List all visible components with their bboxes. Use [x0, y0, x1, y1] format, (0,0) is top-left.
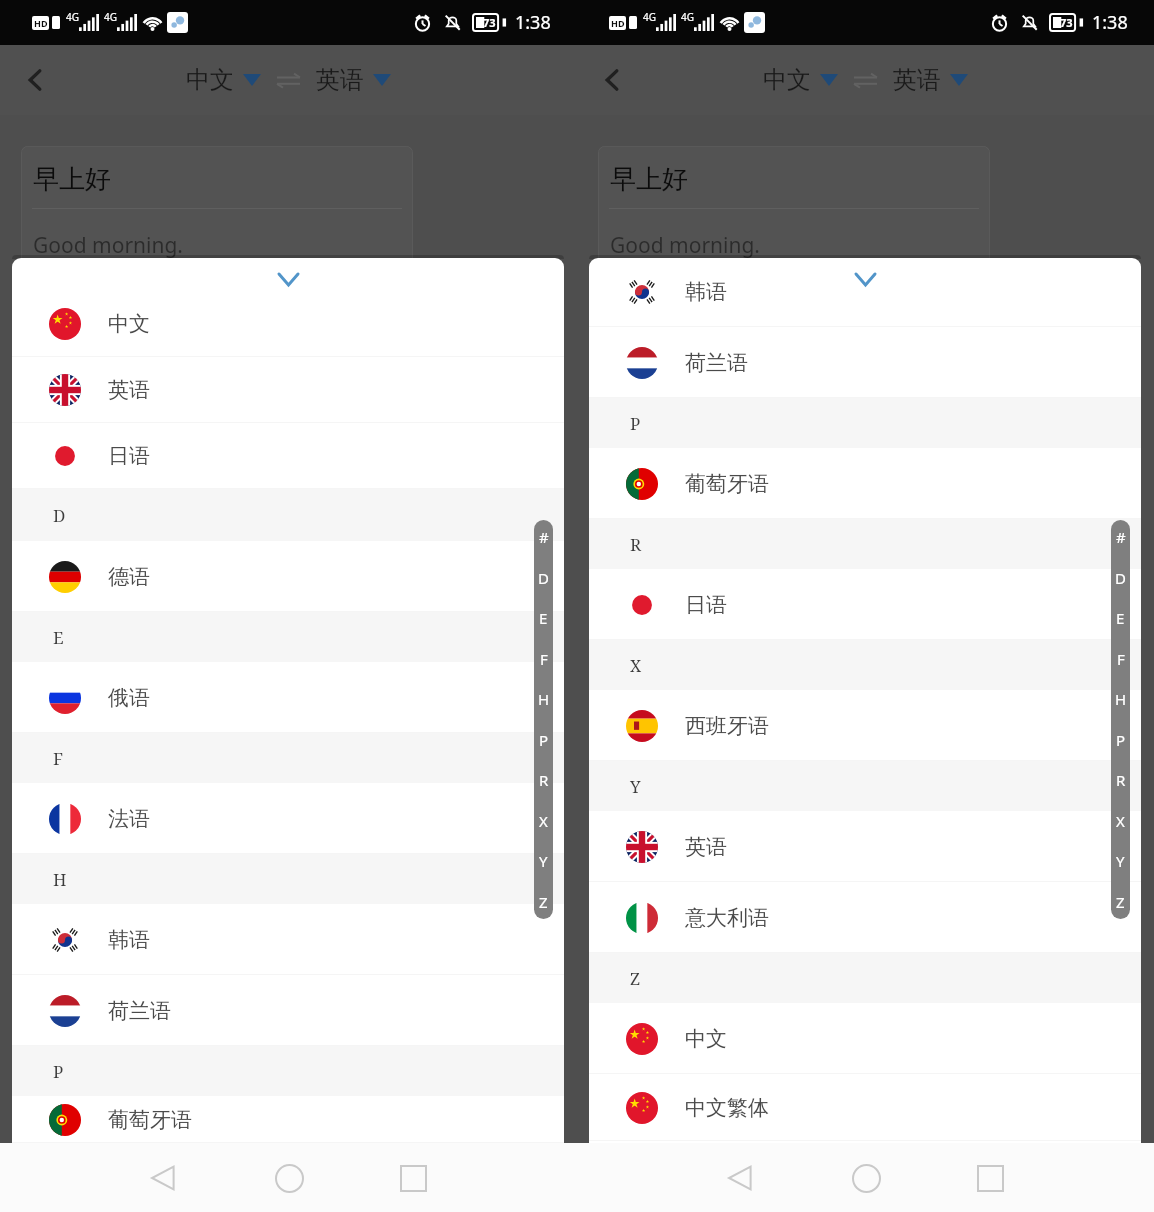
staticText: Z [630, 967, 641, 990]
button[interactable]: 中文 [589, 1003, 1141, 1074]
button[interactable]: 意大利语 [589, 882, 1141, 953]
staticText: 英语 [893, 65, 941, 95]
button[interactable]: 法语 [12, 783, 564, 854]
button[interactable]: 葡萄牙语 [12, 1096, 564, 1143]
staticText: 韩语 [108, 927, 150, 953]
staticText: 早上好 [33, 163, 111, 196]
button[interactable]: Recents [965, 1153, 1015, 1203]
button[interactable]: Home [841, 1153, 891, 1203]
staticText: Z [1116, 892, 1125, 912]
staticText: 德语 [108, 564, 150, 590]
staticText: 英语 [685, 834, 727, 860]
staticText: Y [1116, 851, 1125, 871]
staticText: E [1116, 608, 1125, 628]
staticText: 英语 [316, 65, 364, 95]
staticText: 葡萄牙语 [108, 1107, 192, 1133]
staticText: 荷兰语 [685, 350, 748, 376]
staticText: R [630, 533, 642, 556]
staticText: 1:38 [515, 10, 551, 35]
button[interactable]: Alphabet index [1111, 520, 1130, 919]
staticText: 荷兰语 [108, 998, 171, 1024]
button[interactable]: Recents [388, 1153, 438, 1203]
staticText: H [538, 689, 550, 709]
staticText: 4G [66, 10, 79, 24]
button[interactable]: 荷兰语 [589, 327, 1141, 398]
button[interactable]: Back [589, 57, 635, 103]
staticText: 西班牙语 [685, 713, 769, 739]
staticText: Good morning. [33, 231, 184, 260]
button[interactable]: 中文 [763, 65, 838, 95]
staticText: X [630, 654, 642, 677]
staticText: 中文 [685, 1026, 727, 1052]
staticText: F [1117, 649, 1125, 669]
staticText: F [53, 747, 64, 770]
staticText: 中文繁体 [685, 1095, 769, 1121]
staticText: 葡萄牙语 [685, 471, 769, 497]
staticText: 早上好 [610, 163, 688, 196]
staticText: 中文 [108, 311, 150, 337]
button[interactable]: 英语 [589, 811, 1141, 882]
staticText: Z [539, 892, 548, 912]
button[interactable]: Collapse [243, 258, 333, 300]
staticText: 中文 [186, 65, 234, 95]
staticText: X [1116, 811, 1125, 831]
button[interactable]: 中文 [186, 65, 261, 95]
button[interactable]: Back [139, 1153, 189, 1203]
staticText: F [540, 649, 548, 669]
staticText: 韩语 [685, 279, 727, 305]
staticText: P [630, 412, 641, 435]
staticText: Good morning. [610, 231, 761, 260]
staticText: 日语 [108, 443, 150, 469]
staticText: D [538, 568, 549, 588]
staticText: E [53, 626, 64, 649]
staticText: HD [34, 17, 48, 29]
staticText: P [1116, 730, 1126, 750]
button[interactable]: 韩语 [589, 258, 1141, 327]
staticText: P [53, 1060, 64, 1083]
button[interactable]: 西班牙语 [589, 690, 1141, 761]
button[interactable]: 德语 [12, 541, 564, 612]
button[interactable]: 荷兰语 [12, 975, 564, 1046]
button[interactable]: Home [264, 1153, 314, 1203]
staticText: D [53, 504, 66, 527]
button[interactable]: Swap languages [854, 73, 877, 88]
staticText: Y [539, 851, 548, 871]
button[interactable]: 俄语 [12, 662, 564, 733]
button[interactable]: Swap languages [277, 73, 300, 88]
button[interactable]: Back [716, 1153, 766, 1203]
staticText: 俄语 [108, 685, 150, 711]
staticText: # [539, 527, 549, 547]
staticText: X [539, 811, 548, 831]
button[interactable]: Collapse [820, 258, 910, 300]
staticText: 73 [483, 15, 496, 30]
staticText: H [1115, 689, 1127, 709]
button[interactable]: Alphabet index [534, 520, 553, 919]
staticText: R [1116, 770, 1126, 790]
staticText: 1:38 [1092, 10, 1128, 35]
button[interactable]: 葡萄牙语 [589, 448, 1141, 519]
button[interactable]: 日语 [12, 423, 564, 489]
staticText: # [1116, 527, 1126, 547]
staticText: 法语 [108, 806, 150, 832]
staticText: 日语 [685, 592, 727, 618]
staticText: 73 [1060, 15, 1073, 30]
staticText: 4G [104, 10, 117, 24]
staticText: D [1115, 568, 1126, 588]
button[interactable]: 日语 [589, 569, 1141, 640]
staticText: HD [611, 17, 625, 29]
staticText: 英语 [108, 377, 150, 403]
button[interactable]: 中文 [12, 291, 564, 357]
button[interactable]: 英语 [316, 65, 391, 95]
staticText: 中文 [763, 65, 811, 95]
button[interactable]: 英语 [12, 357, 564, 423]
staticText: 意大利语 [685, 905, 769, 931]
button[interactable]: 韩语 [12, 904, 564, 975]
staticText: E [539, 608, 548, 628]
button[interactable]: 英语 [893, 65, 968, 95]
staticText: 4G [681, 10, 694, 24]
staticText: R [539, 770, 549, 790]
staticText: Y [630, 775, 641, 798]
button[interactable]: Back [12, 57, 58, 103]
button[interactable]: 中文繁体 [589, 1074, 1141, 1141]
staticText: 4G [643, 10, 656, 24]
